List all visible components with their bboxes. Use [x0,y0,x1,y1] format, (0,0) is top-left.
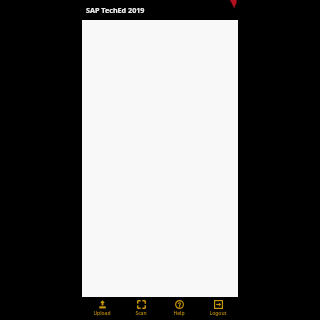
button[interactable]: Logout [200,297,236,320]
other: Help [175,300,184,309]
staticText: Upload [84,310,120,317]
staticText: SAP TechEd 2019 [86,5,145,15]
staticText: Scan [123,310,159,317]
button[interactable]: Scan [123,297,159,320]
other: Logout [214,300,223,309]
other: Upload [98,300,107,309]
button[interactable]: Help [161,297,197,320]
button[interactable]: Upload [84,297,120,320]
staticText: Logout [200,310,236,317]
other: Scan [137,300,146,309]
staticText: Help [161,310,197,317]
